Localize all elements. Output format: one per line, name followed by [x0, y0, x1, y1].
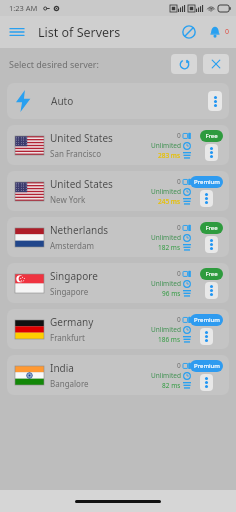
- staticText: Bangalore: [50, 378, 89, 389]
- staticText: 0: [177, 177, 181, 186]
- staticText: 0: [225, 27, 230, 37]
- staticText: 245 ms: [158, 197, 181, 206]
- staticText: 0: [177, 223, 181, 232]
- button[interactable]: Netherlands: [7, 217, 229, 257]
- button[interactable]: More options: [205, 236, 218, 253]
- staticText: 96 ms: [162, 289, 181, 298]
- staticText: Unlimited: [151, 371, 181, 380]
- staticText: India: [50, 361, 74, 375]
- staticText: Free: [205, 270, 218, 278]
- staticText: United States: [50, 177, 113, 191]
- button[interactable]: Singapore: [7, 263, 229, 303]
- button[interactable]: Free: [200, 222, 223, 234]
- button[interactable]: More options: [205, 144, 218, 161]
- button[interactable]: India: [7, 355, 229, 395]
- staticText: 0: [177, 131, 181, 140]
- button[interactable]: Premium: [190, 314, 223, 326]
- button[interactable]: More options: [208, 91, 222, 111]
- staticText: List of Servers: [38, 24, 121, 41]
- staticText: 283 ms: [158, 151, 181, 160]
- staticText: Singapore: [50, 286, 89, 297]
- staticText: Singapore: [50, 269, 98, 283]
- staticText: Premium: [194, 316, 220, 324]
- staticText: Premium: [194, 178, 220, 186]
- staticText: Free: [205, 132, 218, 140]
- staticText: 182 ms: [158, 243, 181, 252]
- staticText: Premium: [194, 362, 220, 370]
- staticText: Unlimited: [151, 141, 181, 150]
- staticText: 82 ms: [162, 381, 181, 390]
- button[interactable]: Home: [75, 500, 161, 503]
- staticText: New York: [50, 194, 86, 205]
- button[interactable]: Notifications: [205, 22, 225, 42]
- staticText: Unlimited: [151, 325, 181, 334]
- button[interactable]: Refresh: [171, 54, 197, 74]
- button[interactable]: Free: [200, 130, 223, 142]
- staticText: Amsterdam: [50, 240, 94, 251]
- button[interactable]: Free: [200, 268, 223, 280]
- button[interactable]: More options: [200, 328, 213, 345]
- staticText: 0: [177, 361, 181, 370]
- button[interactable]: Premium: [190, 360, 223, 372]
- button[interactable]: Auto: [7, 83, 229, 119]
- button[interactable]: United States: [7, 171, 229, 211]
- staticText: United States: [50, 131, 113, 145]
- button[interactable]: Clear: [203, 54, 229, 74]
- staticText: Frankfurt: [50, 332, 85, 343]
- staticText: San Francisco: [50, 148, 102, 159]
- staticText: Netherlands: [50, 223, 109, 237]
- button[interactable]: VPN disconnected: [179, 22, 199, 42]
- staticText: 0: [177, 269, 181, 278]
- button[interactable]: More options: [205, 282, 218, 299]
- staticText: Germany: [50, 315, 94, 329]
- staticText: 0: [177, 315, 181, 324]
- staticText: Free: [205, 224, 218, 232]
- staticText: 186 ms: [158, 335, 181, 344]
- button[interactable]: Premium: [190, 176, 223, 188]
- staticText: 1:23 AM: [9, 3, 38, 13]
- button[interactable]: More options: [200, 374, 213, 391]
- button[interactable]: Menu: [6, 21, 28, 43]
- staticText: Auto: [51, 94, 74, 108]
- button[interactable]: United States: [7, 125, 229, 165]
- button[interactable]: Germany: [7, 309, 229, 349]
- staticText: Unlimited: [151, 233, 181, 242]
- staticText: Unlimited: [151, 279, 181, 288]
- staticText: Select desired server:: [9, 58, 99, 70]
- button[interactable]: More options: [200, 190, 213, 207]
- staticText: Unlimited: [151, 187, 181, 196]
